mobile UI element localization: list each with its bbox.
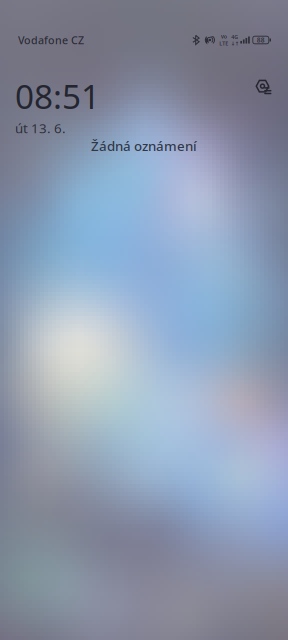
- staticText: LTE: [219, 40, 228, 47]
- staticText: Vodafone CZ: [18, 33, 84, 47]
- staticText: út 13. 6.: [15, 119, 66, 137]
- staticText: 88: [257, 36, 265, 44]
- staticText: Vo: [221, 33, 227, 40]
- staticText: Žádná oznámení: [91, 137, 197, 155]
- staticText: ↓↑: [231, 40, 239, 47]
- staticText: 08:51: [15, 74, 100, 118]
- staticText: 4G: [231, 33, 238, 40]
- button[interactable]: Camera shortcut: [250, 74, 276, 100]
